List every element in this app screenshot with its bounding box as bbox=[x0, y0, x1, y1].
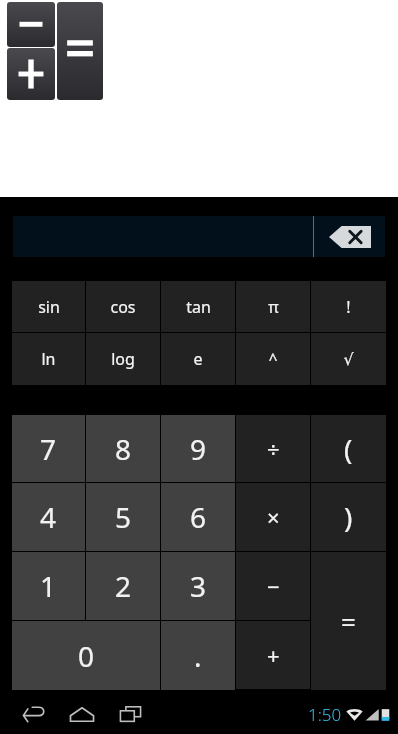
button[interactable]: 6 bbox=[161, 483, 235, 551]
button[interactable]: − bbox=[236, 552, 310, 620]
button[interactable]: 4 bbox=[12, 483, 85, 551]
button[interactable]: ) bbox=[311, 483, 386, 551]
staticText: − bbox=[267, 571, 280, 601]
button[interactable]: e bbox=[161, 333, 235, 385]
button[interactable]: × bbox=[236, 483, 310, 551]
staticText: cos bbox=[110, 296, 136, 318]
button[interactable]: π bbox=[236, 281, 310, 332]
staticText: ) bbox=[344, 498, 353, 536]
staticText: 9 bbox=[190, 430, 207, 468]
staticText: e bbox=[193, 348, 203, 370]
button[interactable]: cos bbox=[86, 281, 160, 332]
staticText: 3 bbox=[190, 567, 207, 605]
button[interactable]: ÷ bbox=[236, 415, 310, 482]
staticText: ! bbox=[346, 296, 351, 318]
button[interactable]: . bbox=[161, 621, 235, 690]
button[interactable]: 1 bbox=[12, 552, 85, 620]
button[interactable]: 8 bbox=[86, 415, 160, 482]
button[interactable]: √ bbox=[311, 333, 386, 385]
staticText: tan bbox=[186, 296, 211, 318]
staticText: ( bbox=[344, 430, 353, 468]
staticText: ^ bbox=[268, 348, 278, 370]
staticText: × bbox=[267, 502, 280, 532]
staticText: + bbox=[267, 640, 280, 670]
button[interactable]: 3 bbox=[161, 552, 235, 620]
button[interactable]: 7 bbox=[12, 415, 85, 482]
button[interactable]: log bbox=[86, 333, 160, 385]
button[interactable]: 9 bbox=[161, 415, 235, 482]
button[interactable]: ^ bbox=[236, 333, 310, 385]
button[interactable]: sin bbox=[12, 281, 85, 332]
button[interactable]: Recent apps bbox=[106, 694, 154, 734]
staticText: 4 bbox=[40, 498, 57, 536]
button[interactable]: ln bbox=[12, 333, 85, 385]
button[interactable]: + bbox=[236, 621, 310, 689]
button[interactable]: Back bbox=[10, 694, 58, 734]
button[interactable]: 2 bbox=[86, 552, 160, 620]
staticText: π bbox=[268, 296, 279, 318]
staticText: 8 bbox=[115, 430, 132, 468]
staticText: . bbox=[194, 637, 202, 675]
button[interactable]: Home bbox=[58, 694, 106, 734]
staticText: 5 bbox=[115, 498, 132, 536]
button[interactable]: ! bbox=[311, 281, 386, 332]
staticText: = bbox=[341, 604, 356, 639]
staticText: sin bbox=[38, 296, 60, 318]
button[interactable]: = bbox=[311, 552, 386, 690]
staticText: ÷ bbox=[267, 434, 280, 464]
staticText: 7 bbox=[40, 430, 57, 468]
staticText: 1 bbox=[40, 567, 57, 605]
staticText: 2 bbox=[115, 567, 132, 605]
staticText: 6 bbox=[190, 498, 207, 536]
button[interactable]: tan bbox=[161, 281, 235, 332]
button[interactable]: 5 bbox=[86, 483, 160, 551]
staticText: ln bbox=[41, 348, 56, 370]
button[interactable]: ( bbox=[311, 415, 386, 482]
staticText: 0 bbox=[78, 637, 95, 675]
staticText: log bbox=[111, 348, 135, 370]
button[interactable]: 0 bbox=[12, 621, 160, 690]
staticText: 1:50 bbox=[308, 703, 342, 726]
staticText: √ bbox=[343, 350, 354, 369]
button[interactable]: Delete bbox=[314, 216, 385, 257]
